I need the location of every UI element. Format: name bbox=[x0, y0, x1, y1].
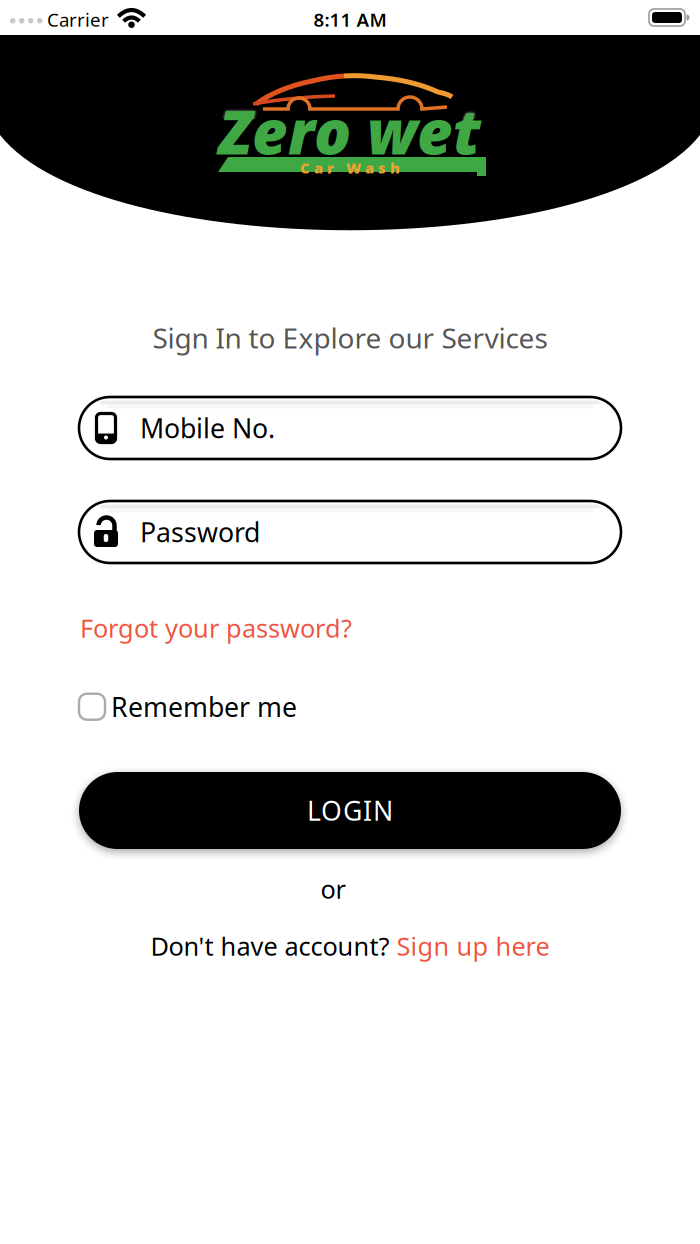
staticText: Forgot your password? bbox=[80, 611, 352, 645]
staticText: Password bbox=[140, 514, 260, 550]
staticText: Sign In to Explore our Services bbox=[152, 319, 547, 356]
staticText: Remember me bbox=[111, 689, 297, 724]
button[interactable]: Mobile No. bbox=[79, 397, 621, 459]
button[interactable]: Remember me bbox=[79, 689, 297, 724]
staticText: Carrier bbox=[47, 7, 109, 32]
staticText: Zero wet bbox=[219, 90, 481, 171]
staticText: or bbox=[320, 872, 345, 906]
button[interactable]: LOGIN bbox=[79, 772, 621, 849]
staticText: Mobile No. bbox=[140, 410, 275, 446]
button[interactable]: Password bbox=[79, 501, 621, 563]
staticText: Car Wash bbox=[300, 158, 400, 177]
button[interactable]: Sign up here bbox=[396, 929, 549, 963]
staticText: Sign up here bbox=[396, 929, 549, 963]
staticText: Don't have account? bbox=[150, 929, 389, 963]
staticText: LOGIN bbox=[307, 793, 393, 828]
staticText: 8:11 AM bbox=[313, 7, 386, 32]
button[interactable]: Forgot your password? bbox=[80, 611, 352, 645]
